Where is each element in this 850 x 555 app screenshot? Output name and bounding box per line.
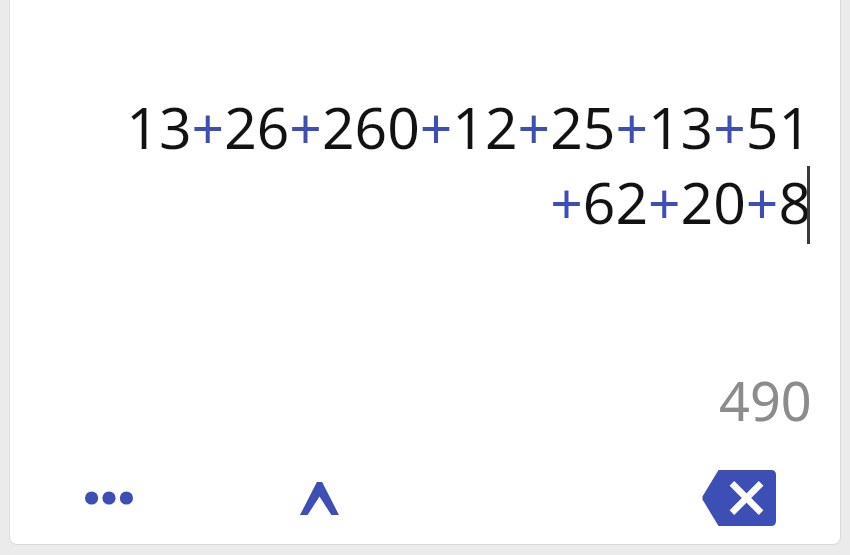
button[interactable]: Expand — [284, 463, 354, 533]
button[interactable]: More options — [74, 463, 144, 533]
staticText: 490 — [719, 363, 812, 437]
staticText: 13+26+260+12+25+13+51+62+20+8 — [108, 88, 811, 241]
button[interactable]: Backspace — [692, 460, 784, 536]
